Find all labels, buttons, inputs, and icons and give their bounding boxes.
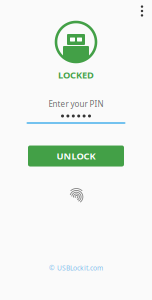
staticText: Enter your PIN xyxy=(48,99,103,109)
button[interactable]: © USBLockit.com xyxy=(46,261,106,275)
button[interactable]: UNLOCK xyxy=(28,145,124,166)
staticText: UNLOCK xyxy=(56,150,95,162)
button[interactable]: More options xyxy=(131,0,152,23)
button[interactable]: Unlock with fingerprint xyxy=(60,178,93,214)
staticText: LOCKED xyxy=(58,69,94,81)
staticText: © USBLockit.com xyxy=(49,264,103,272)
